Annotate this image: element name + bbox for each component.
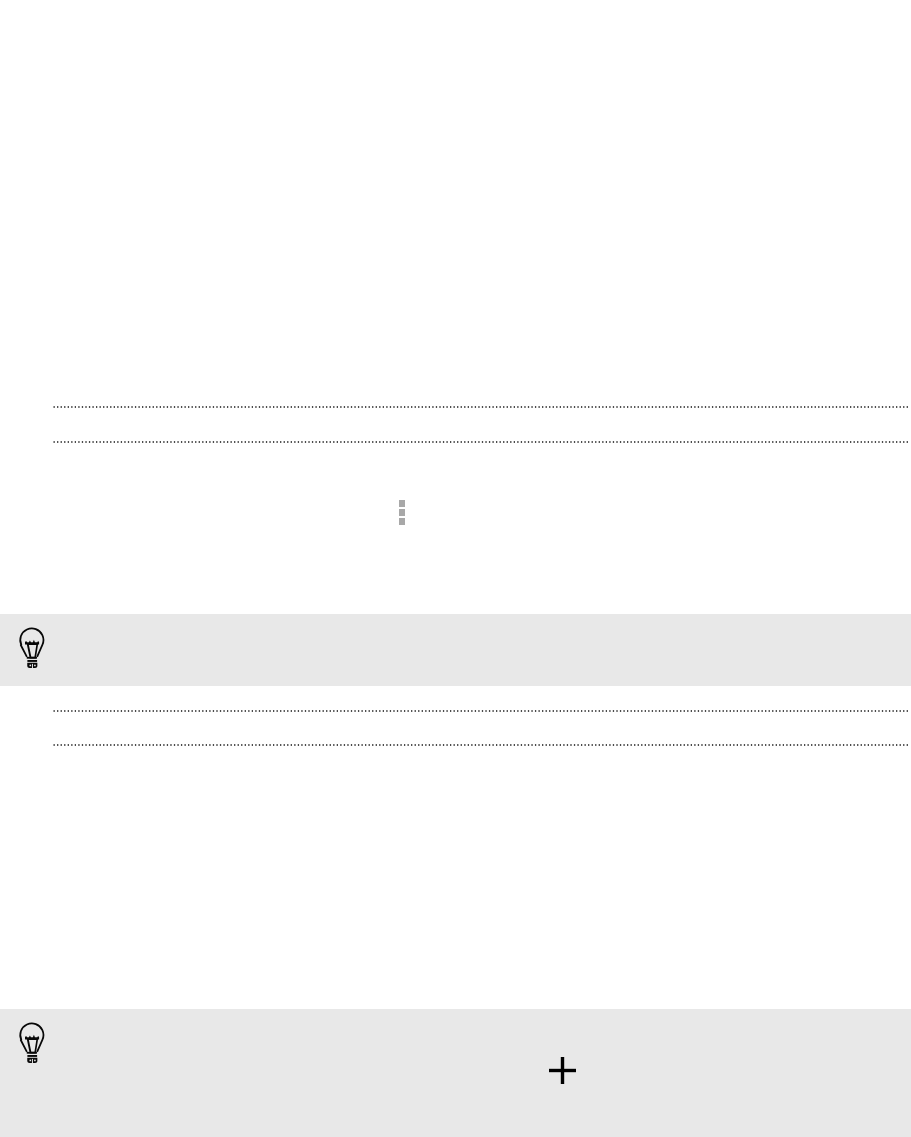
button[interactable]: More options (399, 500, 405, 525)
button[interactable]: Add (537, 1045, 588, 1096)
button[interactable]: Tips (8, 1010, 56, 1058)
button[interactable]: Tip (0, 614, 911, 686)
